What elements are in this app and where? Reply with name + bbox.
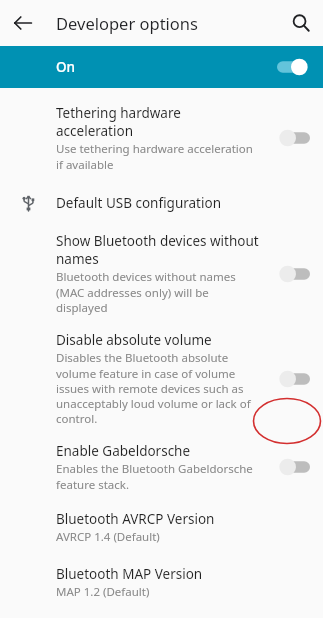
button[interactable]: Bluetooth AVRCP Version <box>0 500 323 555</box>
button[interactable]: Disable absolute volume <box>0 323 323 434</box>
staticText: Enables the Bluetooth Gabeldorsche featu… <box>56 461 259 492</box>
staticText: Default USB configuration <box>56 194 221 212</box>
staticText: Show Bluetooth devices without names <box>56 232 259 268</box>
staticText: On <box>56 58 76 76</box>
button[interactable]: Default USB configuration <box>0 182 323 224</box>
staticText: Enable Gabeldorsche <box>56 442 191 460</box>
staticText: Bluetooth MAP Version <box>56 565 203 583</box>
staticText: Disables the Bluetooth absolute volume f… <box>56 350 259 426</box>
staticText: Bluetooth devices without names (MAC add… <box>56 269 259 315</box>
staticText: Use tethering hardware acceleration if a… <box>56 141 259 172</box>
button[interactable]: On <box>0 46 323 88</box>
button[interactable]: Tethering hardware acceleration <box>0 94 323 182</box>
button[interactable]: Search <box>284 6 318 40</box>
staticText: Disable absolute volume <box>56 331 212 349</box>
button[interactable]: Back <box>6 6 40 40</box>
button[interactable]: Show Bluetooth devices without names <box>0 224 323 323</box>
button[interactable]: Bluetooth MAP Version <box>0 555 323 610</box>
staticText: Tethering hardware acceleration <box>56 104 259 140</box>
staticText: Developer options <box>56 12 198 34</box>
staticText: MAP 1.2 (Default) <box>56 584 150 600</box>
staticText: AVRCP 1.4 (Default) <box>56 529 160 545</box>
staticText: Bluetooth AVRCP Version <box>56 510 215 528</box>
button[interactable]: Enable Gabeldorsche <box>0 434 323 500</box>
